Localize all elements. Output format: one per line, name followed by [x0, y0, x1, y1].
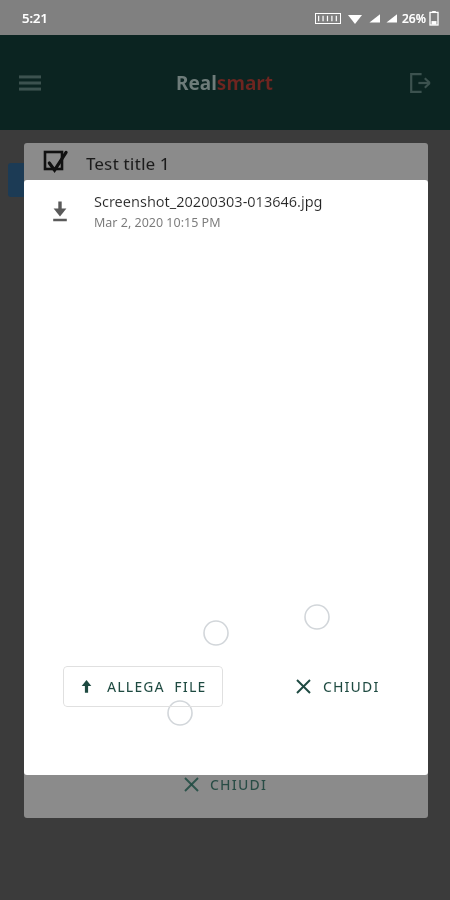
staticText: Test title 1 [86, 152, 170, 175]
button[interactable]: CHIUDI [171, 767, 282, 802]
staticText: Mar 2, 2020 10:15 PM [94, 214, 221, 231]
staticText: Realsmart [176, 70, 274, 96]
staticText: CHIUDI [323, 677, 380, 696]
staticText: CHIUDI [210, 775, 268, 794]
staticText: Screenshot_20200303-013646.jpg [94, 191, 323, 211]
button[interactable]: CHIUDI [285, 666, 392, 707]
staticText: 5:21 [22, 9, 48, 27]
button[interactable]: Logout [398, 61, 442, 105]
button[interactable]: Menu [8, 61, 52, 105]
staticText: ALLEGA FILE [107, 677, 207, 696]
button[interactable]: Screenshot_20200303-013646.jpg [24, 180, 428, 242]
button[interactable]: ALLEGA FILE [63, 666, 223, 707]
staticText: 26% [402, 10, 426, 26]
